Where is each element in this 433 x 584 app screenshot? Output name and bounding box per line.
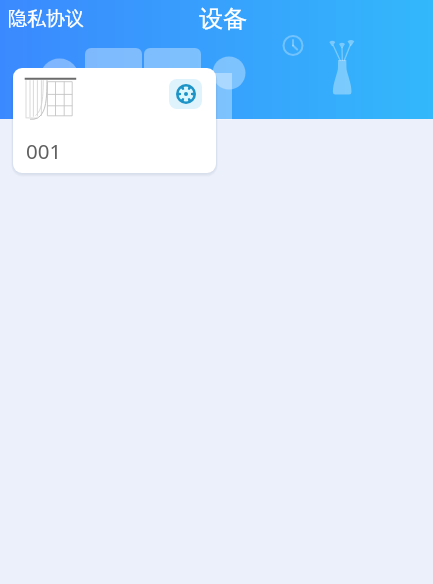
button[interactable]: 隐私协议 bbox=[0, 3, 92, 35]
staticText: 001 bbox=[26, 137, 62, 165]
button[interactable]: Settings bbox=[13, 68, 216, 173]
staticText: 设备 bbox=[199, 4, 247, 34]
staticText: 隐私协议 bbox=[8, 7, 84, 31]
button[interactable]: Settings bbox=[169, 79, 202, 109]
